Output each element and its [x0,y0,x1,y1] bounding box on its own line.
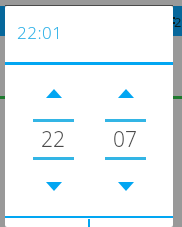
button[interactable]: Increase [96,83,155,104]
button[interactable]: Increase [24,83,83,104]
button[interactable]: Decrease [96,176,155,197]
staticText: 22:01 [17,21,63,44]
button[interactable]: 22:01 [5,6,173,62]
staticText: 07 [113,125,137,154]
staticText: 22 [41,125,65,154]
staticText: 2 [174,13,182,31]
button[interactable]: Decrease [24,176,83,197]
